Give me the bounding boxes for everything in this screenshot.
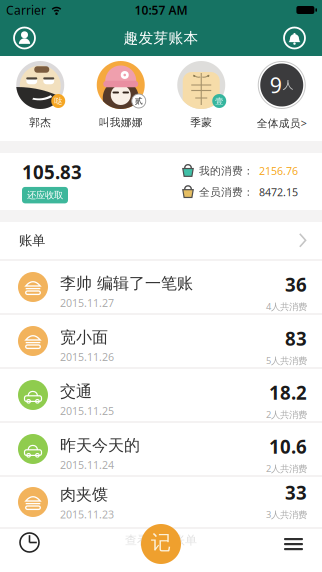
staticText: 5人共消费 [266, 354, 307, 367]
staticText: 9 [270, 71, 282, 99]
staticText: 贰 [135, 96, 143, 106]
button[interactable]: 宽小面 [0, 315, 322, 367]
staticText: 10.6 [269, 434, 307, 459]
staticText: 趣发芽账本 [123, 29, 198, 47]
staticText: 壹 [215, 96, 223, 106]
staticText: 全员消费： [199, 185, 254, 199]
staticText: 账单 [19, 232, 45, 249]
staticText: 查看更多账单 [125, 533, 197, 548]
staticText: 郭杰 [29, 116, 51, 129]
staticText: 人 [283, 78, 294, 91]
staticText: 4人共消费 [266, 300, 307, 313]
staticText: 8472.15 [259, 185, 298, 199]
button[interactable]: 肉夹馍 [0, 477, 322, 527]
staticText: Carrier [6, 2, 46, 18]
staticText: 记 [151, 530, 171, 555]
staticText: 83 [285, 326, 307, 351]
staticText: 105.83 [22, 160, 82, 184]
staticText: 2015.11.27 [60, 296, 114, 310]
staticText: 哒 [54, 96, 62, 106]
button[interactable]: 9 [241, 56, 322, 141]
staticText: 2015.11.26 [60, 350, 114, 364]
staticText: 叫我娜娜 [99, 116, 143, 129]
button[interactable]: 哒 [0, 56, 80, 141]
button[interactable]: 菜单 [284, 538, 303, 550]
staticText: 33 [285, 480, 307, 505]
button[interactable]: 交通 [0, 369, 322, 421]
button[interactable]: 账单 [0, 222, 322, 259]
staticText: 昨天今天的 [60, 435, 140, 455]
staticText: 交通 [60, 381, 92, 401]
button[interactable]: 壹 [161, 56, 241, 141]
staticText: 宽小面 [60, 327, 108, 347]
staticText: 还应收取 [27, 189, 63, 201]
staticText: 36 [285, 272, 307, 297]
button[interactable]: 昨天今天的 [0, 423, 322, 475]
staticText: 2人共消费 [266, 462, 307, 475]
staticText: 肉夹馍 [60, 485, 108, 505]
staticText: 18.2 [269, 380, 307, 405]
staticText: 2015.11.24 [60, 458, 114, 472]
staticText: 2015.11.25 [60, 404, 114, 418]
button[interactable]: 记一笔账 [141, 524, 181, 564]
staticText: 2156.76 [259, 164, 298, 178]
button[interactable]: 李帅 编辑了一笔账 [0, 261, 322, 313]
button[interactable]: 个人中心 [14, 27, 35, 48]
staticText: 季蒙 [190, 116, 212, 129]
button[interactable]: 贰 [80, 56, 161, 141]
staticText: 李帅 编辑了一笔账 [60, 273, 193, 293]
staticText: 3人共消费 [266, 508, 307, 521]
button[interactable]: 通知 [284, 27, 305, 48]
staticText: 全体成员> [257, 116, 307, 130]
staticText: 我的消费： [199, 164, 254, 177]
button[interactable]: 统计 [20, 533, 39, 552]
staticText: 2015.11.23 [60, 507, 114, 521]
staticText: 2人共消费 [266, 408, 307, 421]
staticText: 10:57 AM [134, 2, 187, 18]
